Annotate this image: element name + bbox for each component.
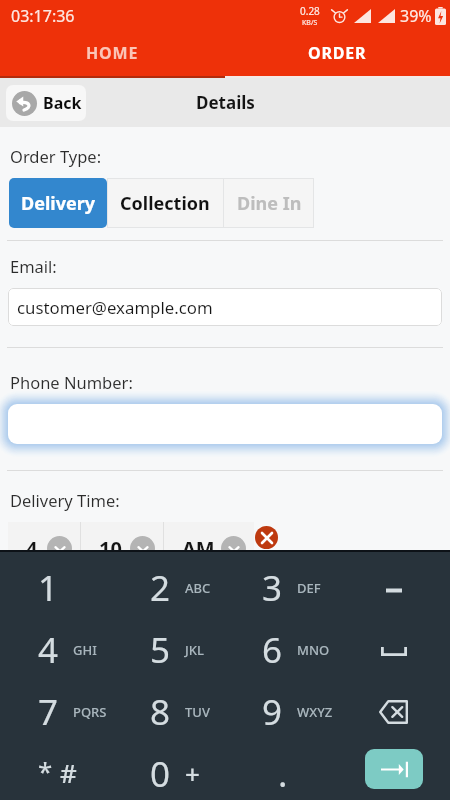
- other: Next: [365, 749, 423, 789]
- staticText: 8: [150, 688, 171, 736]
- staticText: Collection: [120, 191, 210, 216]
- staticText: GHI: [73, 641, 97, 659]
- staticText: 10: [99, 535, 122, 562]
- button[interactable]: Dine In: [224, 178, 314, 228]
- button[interactable]: 9: [224, 676, 337, 738]
- staticText: PQRS: [73, 703, 107, 721]
- button[interactable]: .: [224, 738, 337, 800]
- staticText: 39%: [400, 5, 432, 27]
- staticText: Dine In: [237, 191, 302, 216]
- button[interactable]: 3: [224, 552, 337, 614]
- staticText: DEF: [297, 579, 321, 597]
- staticText: Order Type:: [10, 145, 102, 167]
- staticText: 5: [150, 626, 171, 674]
- staticText: 6: [262, 626, 283, 674]
- staticText: KB/S: [302, 18, 318, 28]
- button[interactable]: HOME: [0, 31, 225, 78]
- staticText: AM: [182, 535, 215, 562]
- other: Space: [381, 647, 407, 656]
- button[interactable]: 8: [112, 676, 224, 738]
- button[interactable]: 1: [0, 552, 112, 614]
- staticText: WXYZ: [297, 703, 333, 721]
- button[interactable]: Backspace: [337, 676, 450, 738]
- staticText: +: [185, 756, 200, 791]
- staticText: MNO: [297, 641, 330, 659]
- other: Minus: [386, 588, 402, 593]
- button[interactable]: 2: [112, 552, 224, 614]
- staticText: Back: [43, 92, 82, 114]
- staticText: TUV: [185, 703, 210, 721]
- staticText: HOME: [86, 42, 139, 64]
- staticText: 2: [150, 564, 171, 612]
- staticText: Details: [196, 91, 255, 114]
- staticText: #: [60, 755, 77, 790]
- other: Backspace: [379, 700, 408, 724]
- staticText: 03:17:36: [11, 5, 75, 27]
- button[interactable]: *: [0, 738, 112, 800]
- button[interactable]: 0: [112, 738, 224, 800]
- staticText: *: [38, 753, 53, 788]
- staticText: .: [278, 750, 288, 798]
- button[interactable]: customer@example.com: [8, 288, 442, 326]
- button[interactable]: Collection: [107, 178, 223, 228]
- button[interactable]: 5: [112, 614, 224, 676]
- staticText: 3: [262, 564, 283, 612]
- staticText: Delivery: [21, 191, 96, 216]
- staticText: 0: [150, 750, 171, 798]
- staticText: customer@example.com: [17, 296, 213, 319]
- button[interactable]: Space: [337, 614, 450, 676]
- staticText: 9: [262, 688, 283, 736]
- button[interactable]: Close: [255, 526, 278, 549]
- staticText: 1: [38, 564, 59, 612]
- staticText: ABC: [185, 579, 211, 597]
- button[interactable]: Minus: [337, 552, 450, 614]
- staticText: 7: [38, 688, 59, 736]
- button[interactable]: 6: [224, 614, 337, 676]
- button[interactable]: 4: [0, 614, 112, 676]
- staticText: Email:: [10, 255, 57, 277]
- staticText: Delivery Time:: [10, 489, 120, 511]
- button[interactable]: Delivery: [9, 178, 107, 228]
- staticText: 4: [26, 535, 38, 562]
- button[interactable]: 4: [8, 522, 80, 566]
- button[interactable]: ORDER: [225, 31, 450, 78]
- button[interactable]: Next: [337, 738, 450, 800]
- staticText: JKL: [185, 641, 204, 659]
- button[interactable]: 10: [81, 522, 163, 566]
- button[interactable]: AM: [164, 522, 254, 566]
- staticText: 0.28: [300, 4, 320, 18]
- button[interactable]: [8, 404, 442, 444]
- staticText: Phone Number:: [10, 371, 133, 393]
- button[interactable]: 7: [0, 676, 112, 738]
- button[interactable]: Back: [6, 85, 86, 121]
- staticText: 4: [38, 626, 59, 674]
- staticText: ORDER: [308, 42, 367, 64]
